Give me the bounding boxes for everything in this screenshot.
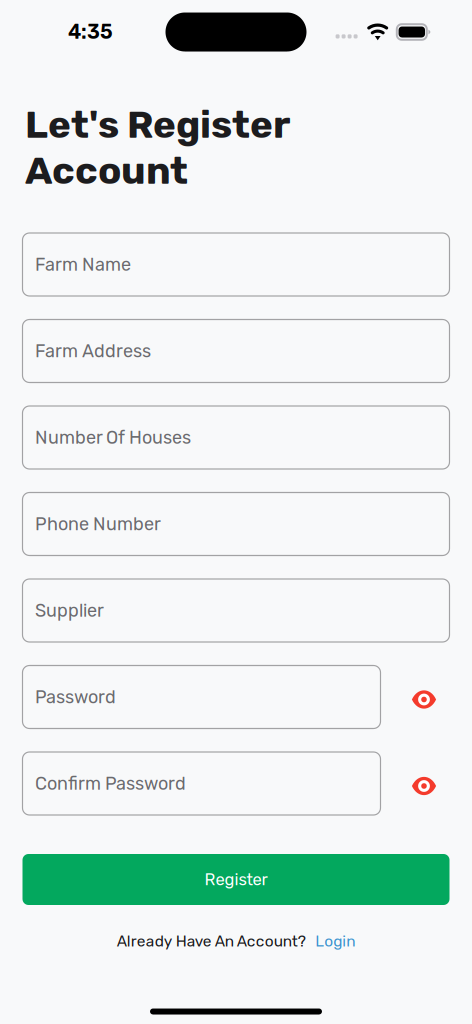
staticText: Login — [315, 932, 355, 950]
staticText: Phone Number — [35, 513, 161, 535]
staticText: Register — [204, 870, 267, 889]
staticText: Password — [35, 686, 116, 708]
button[interactable]: Login — [315, 932, 355, 950]
staticText: Farm Name — [35, 254, 131, 275]
button[interactable]: Register — [22, 854, 449, 905]
staticText: Number Of Houses — [35, 427, 191, 448]
staticText: 4:35 — [68, 20, 113, 44]
staticText: Supplier — [35, 600, 104, 621]
button[interactable]: Show password — [393, 675, 449, 719]
staticText: Let's Register — [25, 102, 290, 147]
staticText: Already Have An Account? — [117, 932, 306, 950]
button[interactable]: Show confirm password — [393, 761, 449, 805]
staticText: Account — [25, 148, 188, 193]
staticText: Confirm Password — [35, 773, 186, 794]
staticText: Farm Address — [35, 340, 151, 362]
